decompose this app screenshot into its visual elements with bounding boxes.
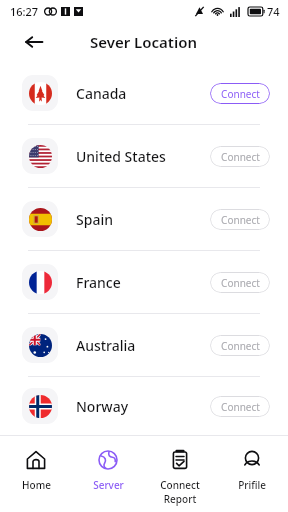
button[interactable]: Connect: [210, 83, 270, 104]
staticText: Canada: [76, 84, 127, 103]
button[interactable]: Connect: [210, 335, 270, 356]
staticText: Connect Report: [144, 478, 216, 506]
staticText: Home: [22, 478, 51, 492]
staticText: Connect: [221, 276, 260, 290]
staticText: Connect: [221, 213, 260, 227]
staticText: 74: [267, 4, 280, 19]
staticText: Sever Location: [90, 32, 198, 52]
button[interactable]: Prifile: [216, 436, 288, 512]
staticText: France: [76, 273, 121, 292]
staticText: Spain: [76, 210, 113, 229]
button[interactable]: Home: [0, 436, 72, 512]
button[interactable]: Connect: [210, 396, 270, 417]
button[interactable]: Norway: [0, 377, 288, 435]
button[interactable]: Spain: [0, 188, 288, 250]
button[interactable]: Server: [72, 436, 144, 512]
button[interactable]: Connect: [210, 209, 270, 230]
staticText: Norway: [76, 397, 129, 416]
button[interactable]: Back: [18, 26, 50, 58]
staticText: 16:27: [10, 4, 39, 19]
staticText: Prifile: [238, 478, 266, 492]
button[interactable]: Connect: [210, 272, 270, 293]
button[interactable]: France: [0, 251, 288, 313]
staticText: Connect: [221, 150, 260, 164]
button[interactable]: United States: [0, 125, 288, 187]
button[interactable]: Australia: [0, 314, 288, 376]
staticText: Connect: [221, 87, 260, 101]
button[interactable]: Canada: [0, 62, 288, 124]
button[interactable]: Connect Report: [144, 436, 216, 512]
staticText: Connect: [221, 339, 260, 353]
staticText: United States: [76, 147, 166, 166]
staticText: Connect: [221, 400, 260, 414]
staticText: Server: [93, 478, 124, 492]
button[interactable]: Connect: [210, 146, 270, 167]
staticText: Australia: [76, 336, 136, 355]
